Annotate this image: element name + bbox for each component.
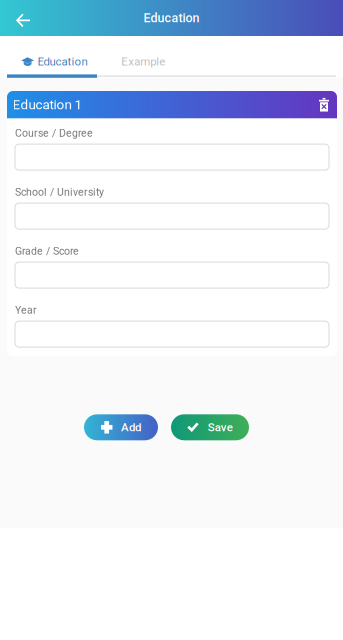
staticText: Year [15,304,37,316]
staticText: Education [37,55,87,68]
button[interactable]: Delete this education entry [314,91,334,118]
staticText: Example [121,55,165,68]
staticText: School / University [15,186,104,198]
staticText: Add [121,421,141,434]
button[interactable]: Education [7,36,97,74]
button[interactable]: Example [97,36,187,74]
staticText: Course / Degree [15,127,93,139]
button[interactable]: Save [171,414,249,440]
button[interactable]: Add [84,414,158,440]
staticText: Save [208,421,233,434]
button[interactable]: Back [0,0,46,36]
staticText: Grade / Score [15,245,79,257]
staticText: Education 1 [12,97,82,113]
staticText: Education [143,11,199,25]
